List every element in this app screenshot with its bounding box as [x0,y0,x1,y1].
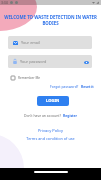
staticText: Don't have an account? [24,113,61,118]
staticText: WELCOME TO WASTE DETECTION IN WATER BODI… [2,14,99,26]
button[interactable]: Privacy Policy [0,128,101,133]
button[interactable]: Your email [8,36,92,49]
staticText: Your email [21,40,40,45]
button[interactable]: Your password [8,55,92,68]
button[interactable]: Terms and condition of use [0,136,101,141]
button[interactable]: Remember Me [11,76,41,80]
staticText: Remember Me [18,76,41,80]
button[interactable]: LOGIN [37,96,69,106]
staticText: Forgot password? [50,84,79,89]
staticText: 3:34 [1,0,8,5]
staticText: Your password [20,59,47,64]
button[interactable]: Register [63,113,78,118]
staticText: LOGIN [46,98,60,104]
button[interactable]: Show password [83,59,89,65]
button[interactable]: Reset it [81,84,94,89]
